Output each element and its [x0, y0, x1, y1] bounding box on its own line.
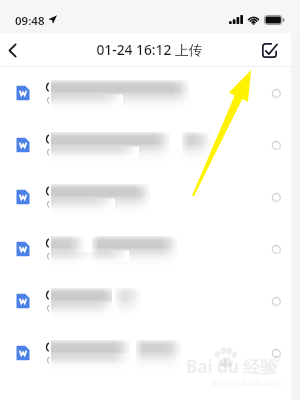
button[interactable]: [0, 275, 300, 327]
button[interactable]: [0, 67, 300, 119]
staticText: jingyan.baidu.com: [212, 377, 282, 388]
button[interactable]: Back: [0, 38, 25, 63]
button[interactable]: [0, 171, 300, 223]
button[interactable]: [0, 327, 300, 379]
button[interactable]: [0, 119, 300, 171]
staticText: 09:48: [15, 13, 45, 26]
button[interactable]: [0, 223, 300, 275]
button[interactable]: Select all: [256, 37, 282, 63]
staticText: 01-24 16:12 上传: [96, 40, 203, 59]
staticText: Bai du 经验: [186, 355, 278, 378]
